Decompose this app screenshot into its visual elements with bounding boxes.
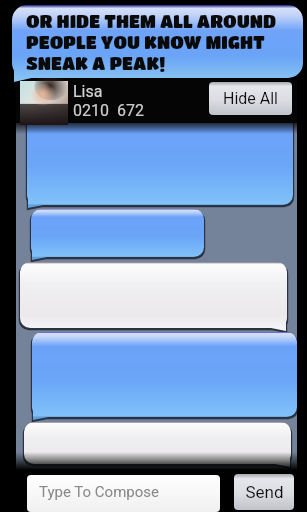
staticText: PEOPLE YOU KNOW MIGHT	[26, 32, 265, 53]
staticText: OR HIDE THEM ALL AROUND	[26, 11, 277, 32]
staticText: SNEAK A PEAK!	[26, 53, 166, 74]
staticText: 672	[117, 101, 144, 120]
staticText: Type To Compose	[39, 483, 159, 501]
button[interactable]: Type To Compose	[27, 475, 220, 512]
staticText: Lisa	[73, 82, 103, 101]
staticText: Send	[245, 482, 284, 502]
button[interactable]: Lisa	[16, 79, 297, 123]
button[interactable]: Hide All	[209, 82, 292, 115]
button[interactable]: Send	[234, 474, 294, 510]
staticText: 0210	[73, 101, 109, 120]
staticText: Hide All	[223, 89, 278, 108]
